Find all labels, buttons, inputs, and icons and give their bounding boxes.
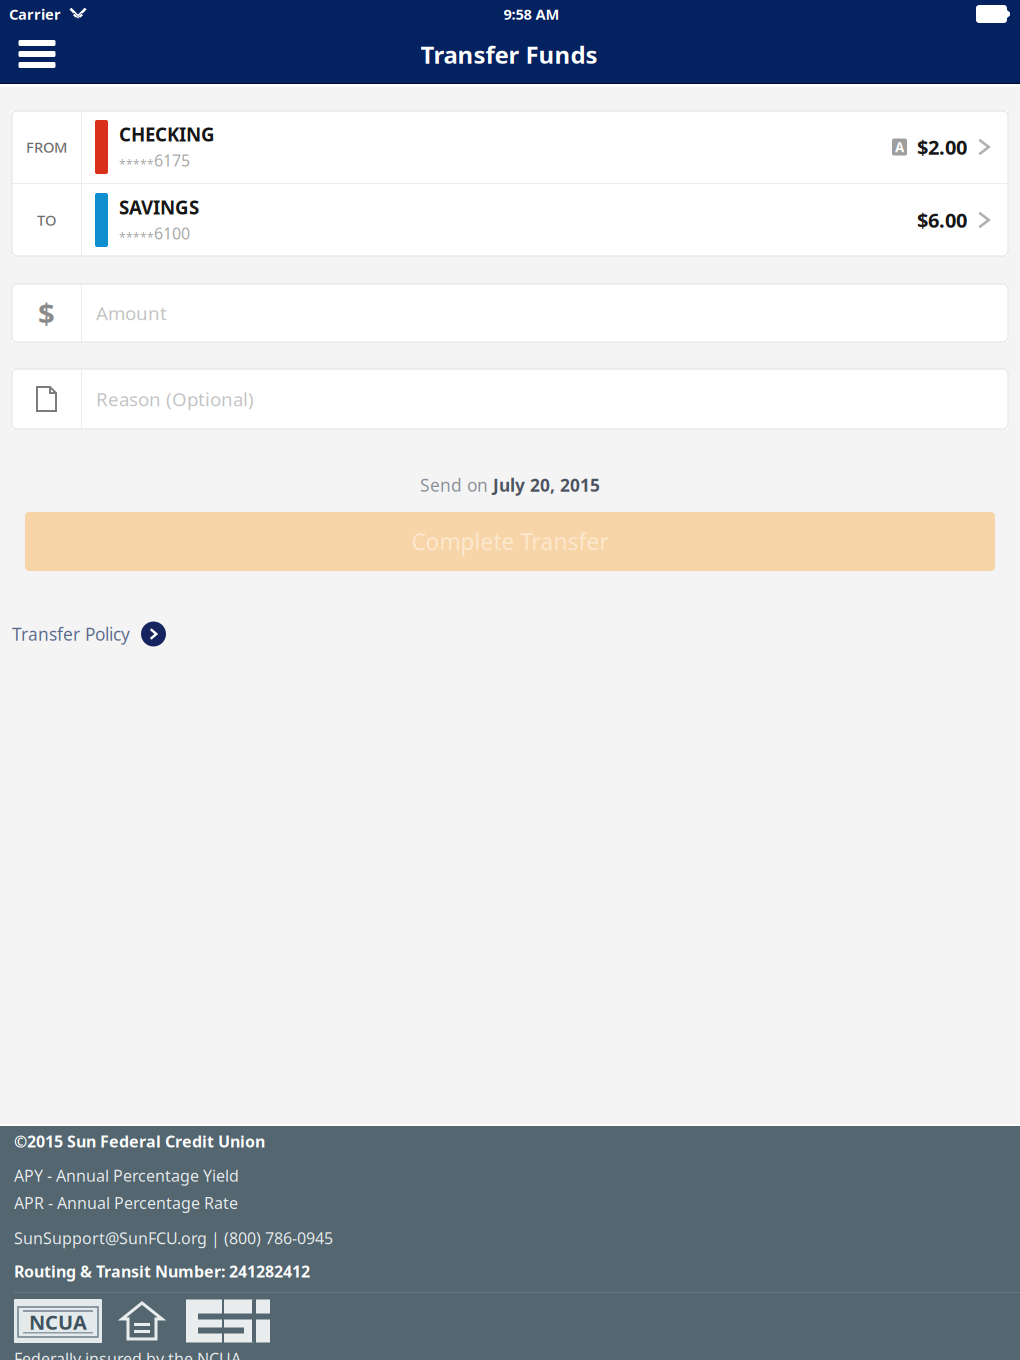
staticText: APY - Annual Percentage Yield: [14, 1165, 239, 1186]
staticText: SunSupport@SunFCU.org | (800) 786-0945: [14, 1227, 333, 1249]
staticText: Amount: [96, 301, 167, 325]
button[interactable]: Complete Transfer: [25, 512, 995, 571]
staticText: Transfer Policy: [12, 622, 130, 645]
staticText: CHECKING: [119, 122, 215, 147]
button[interactable]: Transfer Policy: [0, 611, 178, 657]
staticText: 9:58 AM: [503, 4, 559, 24]
staticText: Transfer Funds: [420, 39, 597, 70]
staticText: Federally insured by the NCUA: [14, 1348, 241, 1360]
staticText: Routing & Transit Number: 241282412: [14, 1261, 310, 1282]
button[interactable]: $: [12, 284, 1008, 342]
staticText: SAVINGS: [119, 195, 199, 220]
staticText: *****6100: [119, 223, 190, 245]
staticText: FROM: [26, 137, 67, 157]
staticText: Complete Transfer: [411, 526, 608, 556]
staticText: APR - Annual Percentage Rate: [14, 1192, 238, 1213]
button[interactable]: FROM: [12, 111, 1008, 183]
button[interactable]: Reason (Optional): [12, 369, 1008, 429]
staticText: Reason (Optional): [96, 387, 254, 411]
button[interactable]: Menu: [0, 29, 74, 85]
staticText: TO: [37, 210, 56, 230]
staticText: Send on: [420, 473, 488, 496]
button[interactable]: TO: [12, 184, 1008, 256]
staticText: ©2015 Sun Federal Credit Union: [14, 1131, 265, 1152]
staticText: NCUA: [29, 1309, 87, 1335]
staticText: $: [38, 293, 55, 332]
staticText: $2.00: [917, 134, 967, 160]
staticText: A: [895, 138, 904, 156]
staticText: $6.00: [917, 207, 967, 233]
staticText: Carrier: [9, 4, 61, 24]
staticText: *****6175: [119, 150, 190, 172]
staticText: July 20, 2015: [493, 473, 600, 496]
